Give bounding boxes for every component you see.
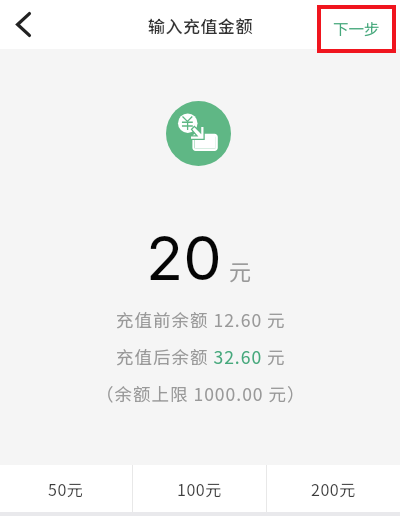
button[interactable]: 200元 [267,465,400,512]
staticText: 输入充值金额 [148,13,253,38]
staticText: 100元 [177,477,222,500]
staticText: 充值后余额 32.60 元 [116,344,286,369]
staticText: 200元 [311,477,356,500]
staticText: 20 [146,221,222,295]
button[interactable]: 下一步 [317,5,396,53]
button[interactable]: 100元 [133,465,266,512]
staticText: （余额上限 1000.00 元） [96,381,306,406]
staticText: 50元 [48,477,84,500]
staticText: 元 [229,254,252,286]
staticText: 充值前余额 12.60 元 [116,307,286,332]
button[interactable]: 50元 [0,465,132,512]
staticText: 下一步 [333,17,380,39]
button[interactable]: Back [0,0,46,49]
